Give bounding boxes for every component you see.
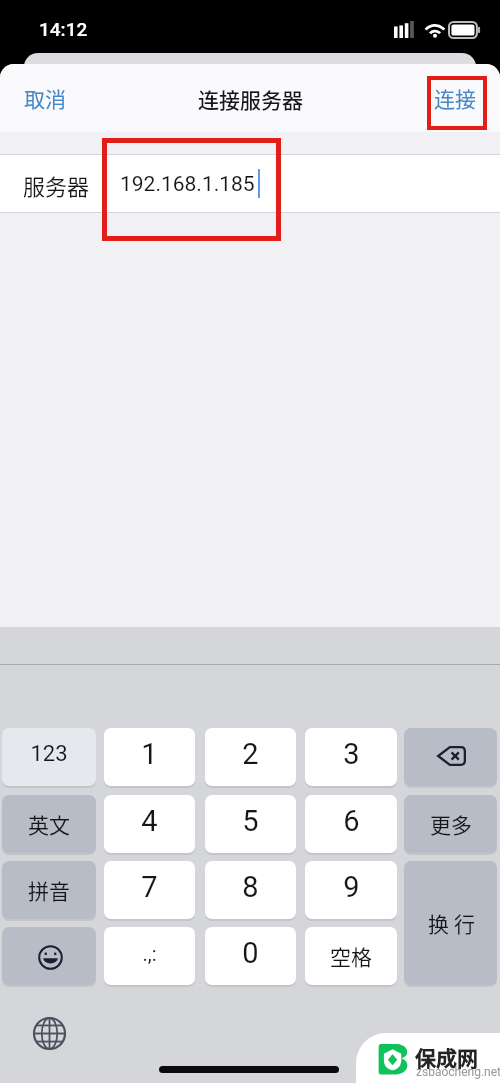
staticText: 空格	[330, 941, 372, 971]
staticText: 4	[141, 804, 158, 838]
button[interactable]: 英文	[2, 795, 96, 853]
button[interactable]: 空格	[305, 927, 397, 985]
button[interactable]: 3	[305, 728, 397, 786]
staticText: 1	[141, 737, 158, 771]
staticText: 连接服务器	[198, 84, 303, 114]
button[interactable]: 2	[205, 728, 296, 786]
staticText: zsbaocheng.net	[416, 1065, 500, 1079]
staticText: 3	[343, 737, 360, 771]
staticText: 服务器	[23, 169, 90, 201]
staticText: 14:12	[39, 18, 88, 40]
staticText: 123	[30, 741, 68, 767]
button[interactable]: 4	[104, 795, 195, 853]
staticText: 英文	[28, 809, 70, 839]
staticText: 2	[242, 737, 259, 771]
button[interactable]: 9	[305, 861, 397, 919]
staticText: 0	[242, 936, 259, 970]
staticText: 9	[343, 870, 360, 904]
staticText: 取消	[24, 83, 66, 113]
staticText: 换行	[428, 908, 480, 938]
button[interactable]: 5	[205, 795, 296, 853]
button[interactable]: 更多	[404, 795, 497, 853]
button[interactable]: 取消	[11, 74, 79, 122]
button[interactable]: 8	[205, 861, 296, 919]
button[interactable]: 1	[104, 728, 195, 786]
staticText: 保成网	[415, 1042, 478, 1072]
staticText: 7	[141, 870, 158, 904]
button[interactable]: Delete	[404, 728, 497, 786]
staticText: 192.168.1.185	[120, 172, 255, 197]
staticText: 拼音	[28, 875, 70, 905]
button[interactable]: 拼音	[2, 861, 96, 919]
staticText: 连接	[434, 83, 476, 113]
button[interactable]: 7	[104, 861, 195, 919]
staticText: 5	[242, 804, 259, 838]
staticText: 6	[343, 804, 360, 838]
staticText: 更多	[430, 809, 472, 839]
button[interactable]: .,:	[104, 927, 195, 985]
button[interactable]: 6	[305, 795, 397, 853]
button[interactable]: Change keyboard language	[28, 1012, 70, 1054]
button[interactable]: Emoji keyboard	[2, 927, 96, 985]
button[interactable]: 123	[2, 728, 96, 786]
button[interactable]: 连接	[421, 74, 489, 122]
staticText: 8	[242, 870, 259, 904]
staticText: .,:	[142, 942, 157, 965]
button[interactable]: 换行	[404, 861, 497, 985]
button[interactable]: 0	[205, 927, 296, 985]
